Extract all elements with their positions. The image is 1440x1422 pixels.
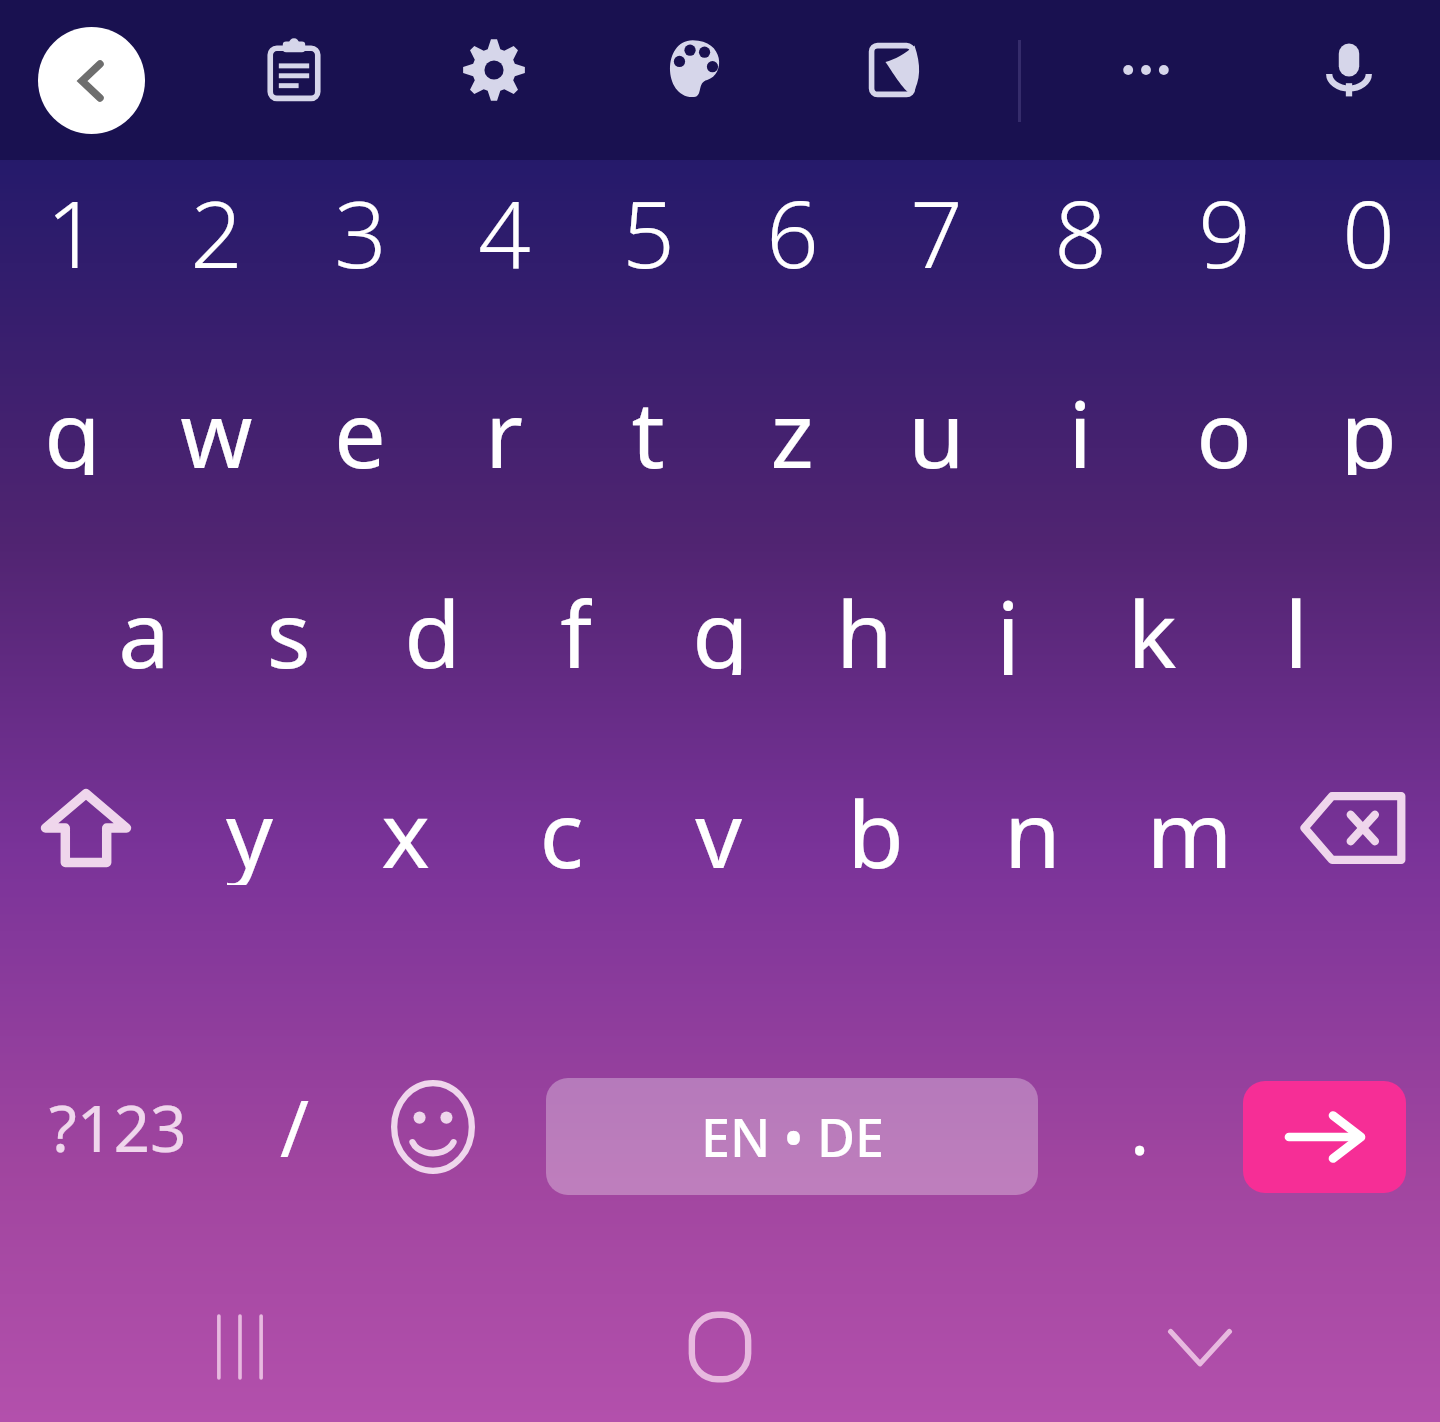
button[interactable]: Keyboard mode	[852, 26, 940, 114]
staticText: j	[996, 570, 1020, 675]
staticText: d	[404, 570, 461, 675]
button[interactable]: m	[1111, 770, 1268, 885]
staticText: y	[226, 770, 273, 885]
staticText: f	[560, 570, 592, 675]
button[interactable]: 4	[432, 170, 576, 275]
staticText: ?123	[49, 1084, 187, 1171]
button[interactable]: 3	[288, 170, 432, 275]
staticText: m	[1146, 770, 1233, 885]
staticText: g	[692, 570, 749, 675]
staticText: l	[1284, 570, 1308, 675]
button[interactable]: Voice input	[1305, 26, 1393, 114]
button[interactable]: 9	[1152, 170, 1296, 275]
button[interactable]: x	[327, 770, 483, 885]
button[interactable]: z	[720, 370, 864, 475]
button[interactable]: a	[72, 570, 216, 675]
staticText: a	[118, 570, 170, 675]
staticText: b	[847, 770, 904, 885]
button[interactable]: q	[0, 370, 144, 475]
button[interactable]: d	[360, 570, 504, 675]
staticText: /	[280, 1074, 310, 1180]
staticText: o	[1196, 370, 1252, 475]
button[interactable]: p	[1296, 370, 1440, 475]
button[interactable]: Emoji	[360, 1042, 505, 1212]
staticText: t	[631, 370, 665, 475]
staticText: 9	[1198, 170, 1251, 275]
button[interactable]: Enter	[1243, 1081, 1406, 1193]
button[interactable]: o	[1152, 370, 1296, 475]
button[interactable]: b	[797, 770, 954, 885]
button[interactable]: Home	[480, 1272, 960, 1422]
button[interactable]: i	[1008, 370, 1152, 475]
button[interactable]: Back	[38, 27, 145, 134]
staticText: h	[836, 570, 893, 675]
staticText: q	[44, 370, 101, 475]
button[interactable]: 5	[576, 170, 720, 275]
staticText: 0	[1342, 170, 1395, 275]
button[interactable]: Shift	[0, 770, 171, 885]
staticText: i	[1068, 370, 1092, 475]
button[interactable]: c	[483, 770, 640, 885]
button[interactable]: .	[1060, 1042, 1220, 1212]
button[interactable]: /	[215, 1042, 375, 1212]
staticText: p	[1340, 370, 1397, 475]
button[interactable]: 6	[720, 170, 864, 275]
staticText: n	[1004, 770, 1061, 885]
button[interactable]: ?123	[20, 1042, 215, 1212]
staticText: 6	[766, 170, 819, 275]
button[interactable]: Hide keyboard	[960, 1272, 1440, 1422]
staticText: c	[539, 770, 584, 885]
button[interactable]: j	[936, 570, 1080, 675]
button[interactable]: More options	[1102, 26, 1190, 114]
button[interactable]: EN • DE	[546, 1078, 1038, 1195]
button[interactable]: k	[1080, 570, 1224, 675]
button[interactable]: 1	[0, 170, 144, 275]
button[interactable]: y	[171, 770, 327, 885]
button[interactable]: n	[954, 770, 1111, 885]
staticText: 3	[334, 170, 387, 275]
staticText: z	[770, 370, 814, 475]
button[interactable]: Backspace	[1268, 770, 1440, 885]
staticText: 8	[1054, 170, 1107, 275]
button[interactable]: t	[576, 370, 720, 475]
staticText: 5	[622, 170, 675, 275]
staticText: k	[1127, 570, 1177, 675]
button[interactable]: Clipboard	[250, 26, 338, 114]
button[interactable]: 2	[144, 170, 288, 275]
button[interactable]: u	[864, 370, 1008, 475]
staticText: EN • DE	[701, 1101, 884, 1172]
button[interactable]: r	[432, 370, 576, 475]
staticText: 2	[190, 170, 243, 275]
button[interactable]: Themes	[650, 26, 738, 114]
staticText: s	[266, 570, 311, 675]
staticText: x	[381, 770, 430, 885]
button[interactable]: g	[648, 570, 792, 675]
staticText: 1	[46, 170, 99, 275]
button[interactable]: Recent apps	[0, 1272, 480, 1422]
button[interactable]: f	[504, 570, 648, 675]
staticText: 7	[910, 170, 963, 275]
button[interactable]: Settings	[450, 26, 538, 114]
button[interactable]: l	[1224, 570, 1368, 675]
staticText: r	[485, 370, 523, 475]
staticText: .	[1130, 1078, 1150, 1176]
button[interactable]: 8	[1008, 170, 1152, 275]
staticText: e	[334, 370, 386, 475]
button[interactable]: e	[288, 370, 432, 475]
button[interactable]: h	[792, 570, 936, 675]
button[interactable]: s	[216, 570, 360, 675]
staticText: u	[908, 370, 965, 475]
staticText: v	[695, 770, 742, 885]
staticText: w	[180, 370, 253, 475]
button[interactable]: v	[640, 770, 797, 885]
staticText: 4	[478, 170, 531, 275]
button[interactable]: w	[144, 370, 288, 475]
button[interactable]: 0	[1296, 170, 1440, 275]
button[interactable]: 7	[864, 170, 1008, 275]
